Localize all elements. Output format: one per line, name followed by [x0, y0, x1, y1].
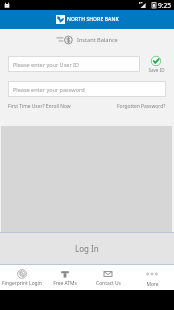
- button[interactable]: Forgotten Password?: [117, 103, 166, 110]
- staticText: More: [146, 281, 159, 288]
- button[interactable]: Save ID: [145, 55, 167, 73]
- button[interactable]: First Time User? Enroll Now: [8, 103, 71, 110]
- button[interactable]: Free ATMs: [43, 265, 86, 290]
- button[interactable]: Please enter your password: [8, 81, 166, 97]
- button[interactable]: Please enter your User ID: [8, 56, 140, 72]
- staticText: Log In: [75, 243, 99, 254]
- staticText: Free ATMs: [53, 280, 77, 287]
- staticText: Please enter your User ID: [13, 61, 79, 68]
- staticText: Contact Us: [96, 280, 121, 287]
- staticText: Save ID: [148, 67, 165, 73]
- staticText: Fingerprint Login: [2, 280, 42, 287]
- staticText: NORTH SHORE BANK: [67, 16, 119, 23]
- button[interactable]: Contact Us: [86, 265, 130, 290]
- button[interactable]: Log In: [0, 233, 174, 264]
- staticText: 9:25: [158, 1, 172, 10]
- staticText: Please enter your password: [13, 86, 85, 93]
- button[interactable]: Fingerprint Login: [0, 265, 43, 290]
- button[interactable]: More: [130, 265, 174, 290]
- staticText: Instant Balance: [77, 36, 118, 44]
- button[interactable]: NORTH SHORE BANK: [56, 15, 119, 24]
- button[interactable]: Instant Balance: [56, 35, 118, 45]
